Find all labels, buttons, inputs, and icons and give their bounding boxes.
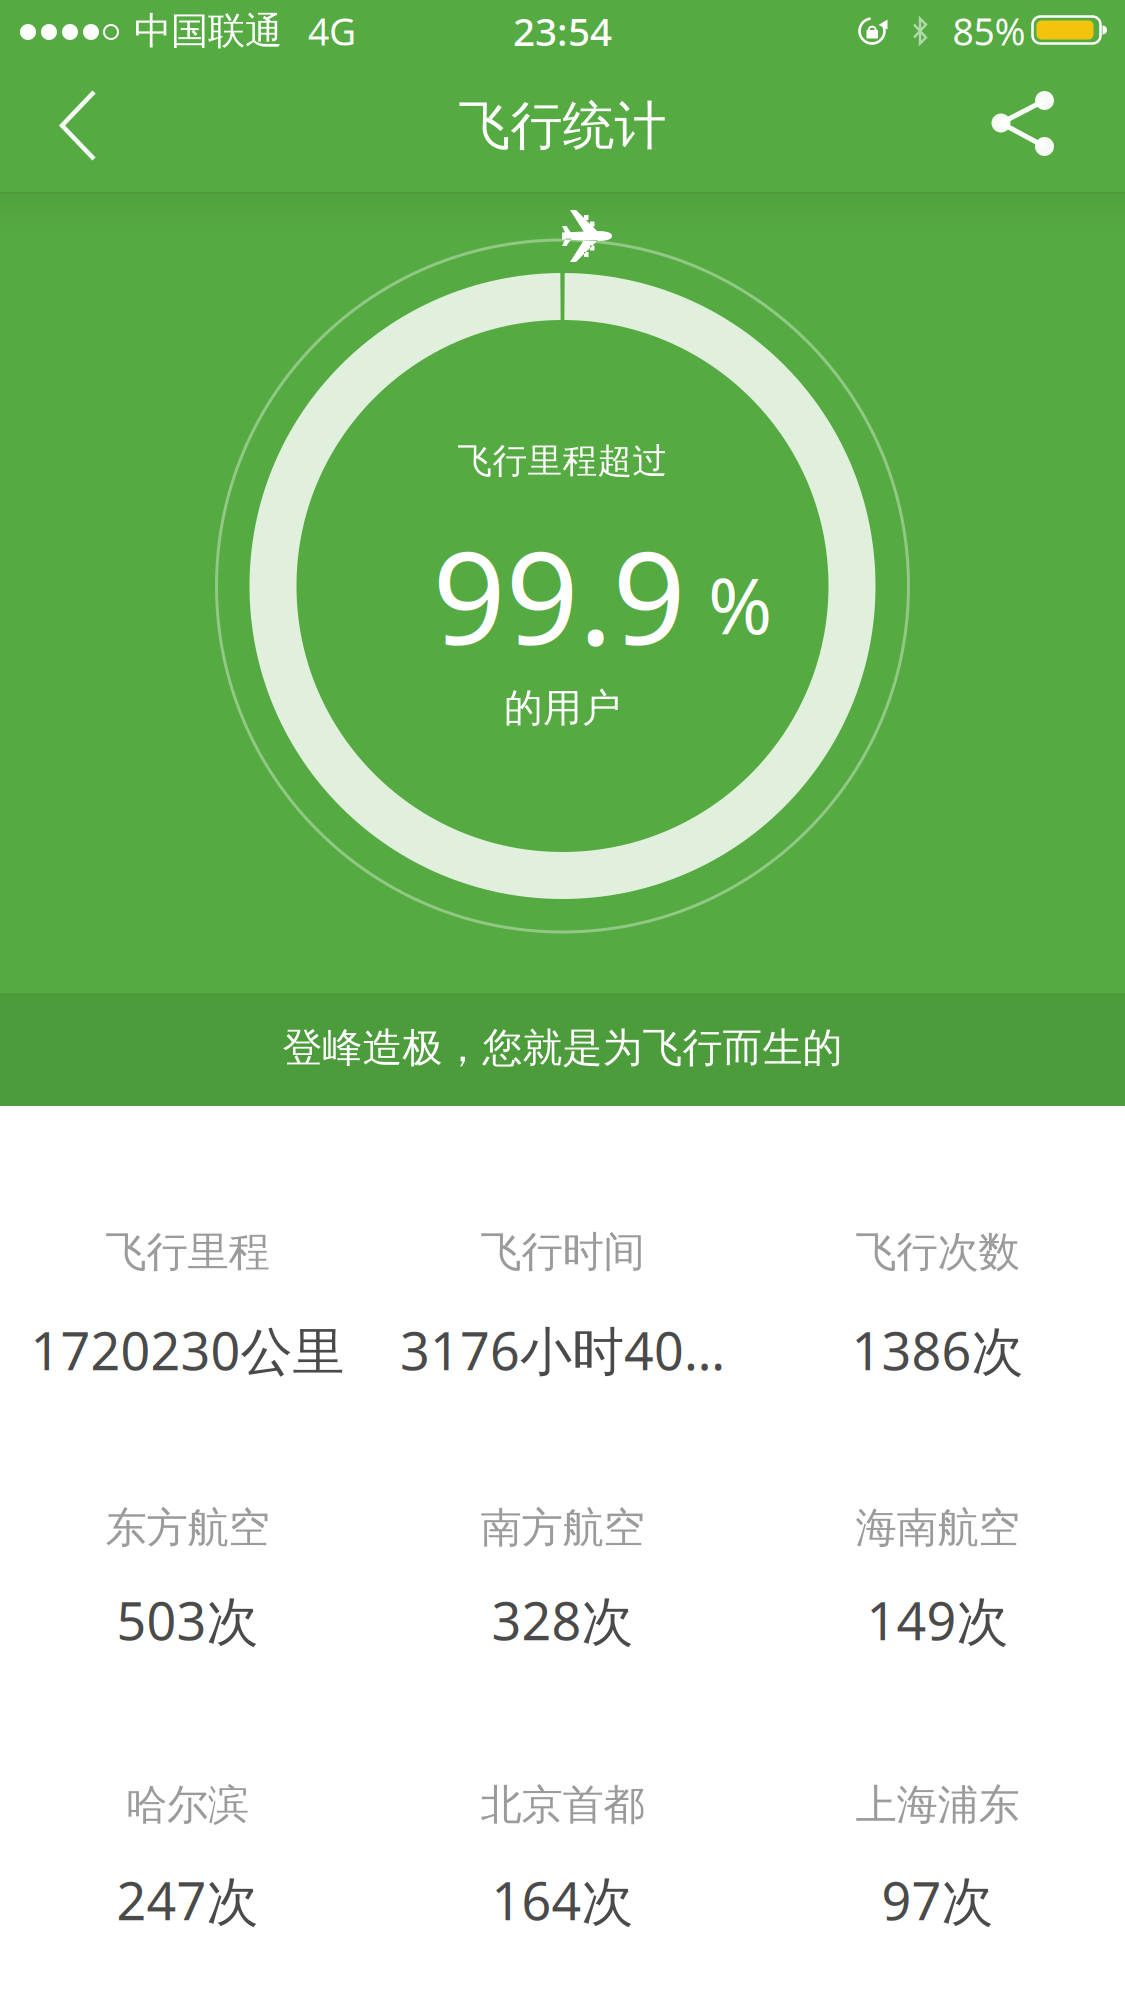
staticText: 85% <box>952 6 1025 56</box>
staticText: 97次 <box>881 1865 993 1935</box>
staticText: 3176小时40… <box>400 1315 725 1385</box>
staticText: 飞行时间 <box>480 1227 644 1277</box>
staticText: 南方航空 <box>480 1503 644 1553</box>
staticText: 23:54 <box>513 5 612 57</box>
staticText: 503次 <box>116 1585 258 1655</box>
staticText: 上海浦东 <box>855 1780 1019 1830</box>
staticText: % <box>708 553 772 655</box>
staticText: 东方航空 <box>105 1503 269 1553</box>
staticText: 1386次 <box>851 1315 1023 1385</box>
staticText: 北京首都 <box>480 1780 644 1830</box>
staticText: 149次 <box>866 1585 1008 1655</box>
staticText: 99.9 <box>432 510 685 680</box>
staticText: 海南航空 <box>855 1503 1019 1553</box>
staticText: 的用户 <box>504 684 621 732</box>
staticText: 1720230公里 <box>30 1315 344 1385</box>
button[interactable]: Back <box>50 83 140 169</box>
staticText: 4G <box>308 6 356 56</box>
staticText: 飞行里程超过 <box>457 440 667 482</box>
staticText: 飞行里程 <box>105 1227 269 1277</box>
staticText: 328次 <box>491 1585 633 1655</box>
button[interactable]: Share <box>977 77 1069 169</box>
staticText: 哈尔滨 <box>126 1780 249 1830</box>
staticText: 飞行统计 <box>458 94 666 158</box>
staticText: 中国联通 <box>134 8 282 54</box>
staticText: 247次 <box>116 1865 258 1935</box>
staticText: 飞行次数 <box>855 1227 1019 1277</box>
staticText: 164次 <box>491 1865 633 1935</box>
staticText: 登峰造极，您就是为飞行而生的 <box>282 1023 842 1072</box>
